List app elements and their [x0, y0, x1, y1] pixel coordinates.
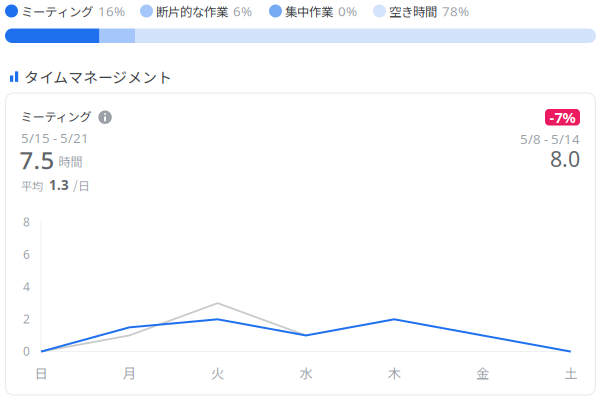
staticText: 0: [23, 343, 30, 359]
staticText: タイムマネージメント: [24, 66, 172, 87]
staticText: 5/8 - 5/14: [520, 130, 580, 148]
staticText: 1.3: [49, 176, 69, 194]
staticText: 時間: [58, 152, 82, 170]
staticText: 2: [23, 311, 30, 327]
staticText: ミーティング: [21, 2, 93, 20]
staticText: 16%: [98, 2, 125, 20]
staticText: 空き時間: [389, 2, 437, 20]
staticText: /日: [73, 177, 90, 194]
staticText: 木: [388, 363, 401, 382]
staticText: 5/15 - 5/21: [21, 129, 89, 147]
staticText: 金: [476, 363, 489, 382]
staticText: 断片的な作業: [156, 2, 228, 20]
staticText: -7%: [549, 107, 575, 127]
staticText: 月: [123, 363, 136, 382]
staticText: 集中作業: [285, 2, 333, 20]
staticText: 土: [564, 363, 577, 382]
staticText: 平均: [21, 177, 43, 194]
staticText: 78%: [442, 2, 469, 20]
staticText: 4: [23, 279, 30, 294]
staticText: 8: [23, 214, 30, 230]
staticText: 日: [34, 363, 47, 382]
staticText: 0%: [338, 2, 357, 20]
staticText: ミーティング: [20, 107, 91, 125]
staticText: 7.5: [19, 144, 54, 176]
staticText: 8.0: [550, 144, 580, 173]
staticText: 火: [211, 363, 224, 382]
staticText: 6: [23, 246, 30, 262]
staticText: 6%: [233, 2, 252, 20]
staticText: 水: [299, 363, 312, 382]
